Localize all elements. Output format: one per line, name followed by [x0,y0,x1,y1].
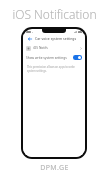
staticText: This permission allows an apps to write … [27,65,81,72]
button[interactable]: Back [26,35,33,42]
staticText: Car voice system settings [35,36,77,41]
staticText: Show write system settings [26,56,71,60]
staticText: DPM.GE [40,163,69,173]
button[interactable]: iOS Notifs [23,43,85,53]
staticText: iOS Notification [12,6,97,22]
staticText: iOS Notifs [33,46,48,50]
button[interactable]: Toggle write system settings [73,55,82,60]
button[interactable]: Show write system settings [23,53,85,62]
